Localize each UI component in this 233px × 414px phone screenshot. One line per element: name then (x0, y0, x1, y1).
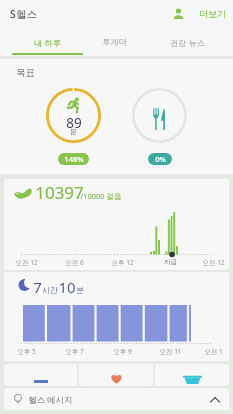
button[interactable]: 건강 뉴스 (146, 28, 229, 56)
button[interactable]: Profile (167, 1, 189, 25)
staticText: 오전 1 (204, 347, 223, 356)
staticText: 0% (155, 154, 166, 164)
staticText: 분 (70, 127, 77, 136)
staticText: 오후 12 (111, 258, 134, 267)
staticText: 오전 11 (159, 347, 182, 356)
button[interactable]: 내 하루 (12, 28, 83, 56)
button[interactable] (155, 364, 229, 386)
button[interactable]: 7 (4, 272, 229, 361)
staticText: 더보기 (199, 8, 226, 19)
staticText: 건강 뉴스 (170, 37, 205, 48)
button[interactable]: Expand (207, 391, 223, 407)
staticText: 투게더 (102, 37, 127, 47)
staticText: 오후 9 (113, 347, 132, 356)
button[interactable] (4, 364, 77, 386)
button[interactable]: 헬스 메시지 (4, 388, 229, 410)
staticText: 지금 (164, 258, 177, 266)
button[interactable]: 148% (58, 153, 89, 165)
button[interactable]: 0% (148, 153, 172, 165)
staticText: 89 (66, 114, 82, 132)
staticText: 오전 12 (15, 258, 38, 267)
staticText: 헬스 메시지 (28, 394, 73, 406)
staticText: 7 (33, 277, 42, 297)
button[interactable]: 목표 (0, 59, 233, 174)
staticText: 분 (76, 285, 84, 295)
staticText: 10397 (35, 181, 84, 204)
staticText: 오후 7 (65, 347, 84, 356)
staticText: 오전 6 (65, 258, 84, 267)
staticText: 오전 12 (202, 258, 225, 267)
button[interactable]: 10397 (4, 179, 229, 270)
staticText: 목표 (16, 67, 35, 79)
staticText: S헬스 (10, 7, 37, 21)
button[interactable]: 더보기 (193, 1, 231, 25)
button[interactable] (79, 364, 153, 386)
staticText: /10000 걸음 (80, 191, 122, 201)
staticText: 시간 (42, 285, 58, 295)
staticText: 148% (64, 154, 84, 164)
staticText: 내 하루 (34, 37, 61, 48)
staticText: 10 (58, 277, 76, 297)
button[interactable]: 투게더 (83, 28, 146, 56)
staticText: 오후 5 (17, 347, 36, 356)
